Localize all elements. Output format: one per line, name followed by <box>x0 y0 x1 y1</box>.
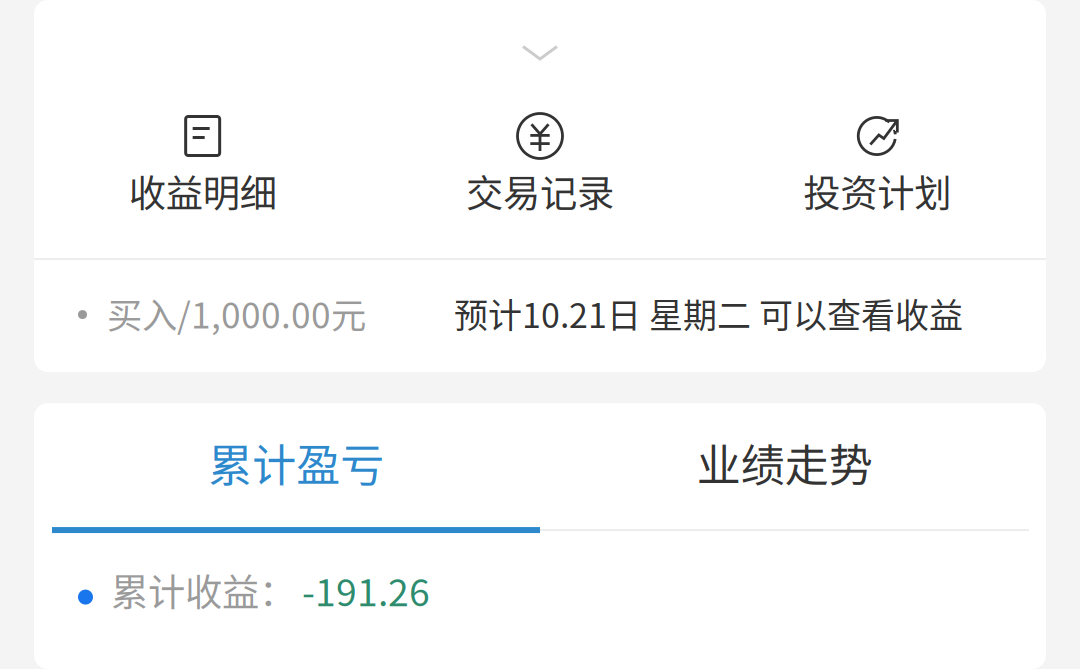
staticText: 交易记录 <box>466 164 614 218</box>
staticText: 收益明细 <box>129 164 277 218</box>
staticText: 投资计划 <box>803 164 951 218</box>
button[interactable]: 投资计划 <box>709 112 1046 218</box>
staticText: 买入/1,000.00元 <box>107 287 366 339</box>
button[interactable]: 交易记录 <box>371 112 709 218</box>
button[interactable]: 累计盈亏 <box>52 403 540 527</box>
staticText: 预计10.21日 星期二 可以查看收益 <box>454 288 963 338</box>
staticText: 累计盈亏 <box>208 431 384 494</box>
button[interactable]: 收益明细 <box>34 112 371 218</box>
staticText: 累计收益： <box>111 563 296 617</box>
button[interactable]: 业绩走势 <box>540 403 1029 527</box>
staticText: -191.26 <box>302 563 430 617</box>
staticText: 业绩走势 <box>697 431 873 494</box>
